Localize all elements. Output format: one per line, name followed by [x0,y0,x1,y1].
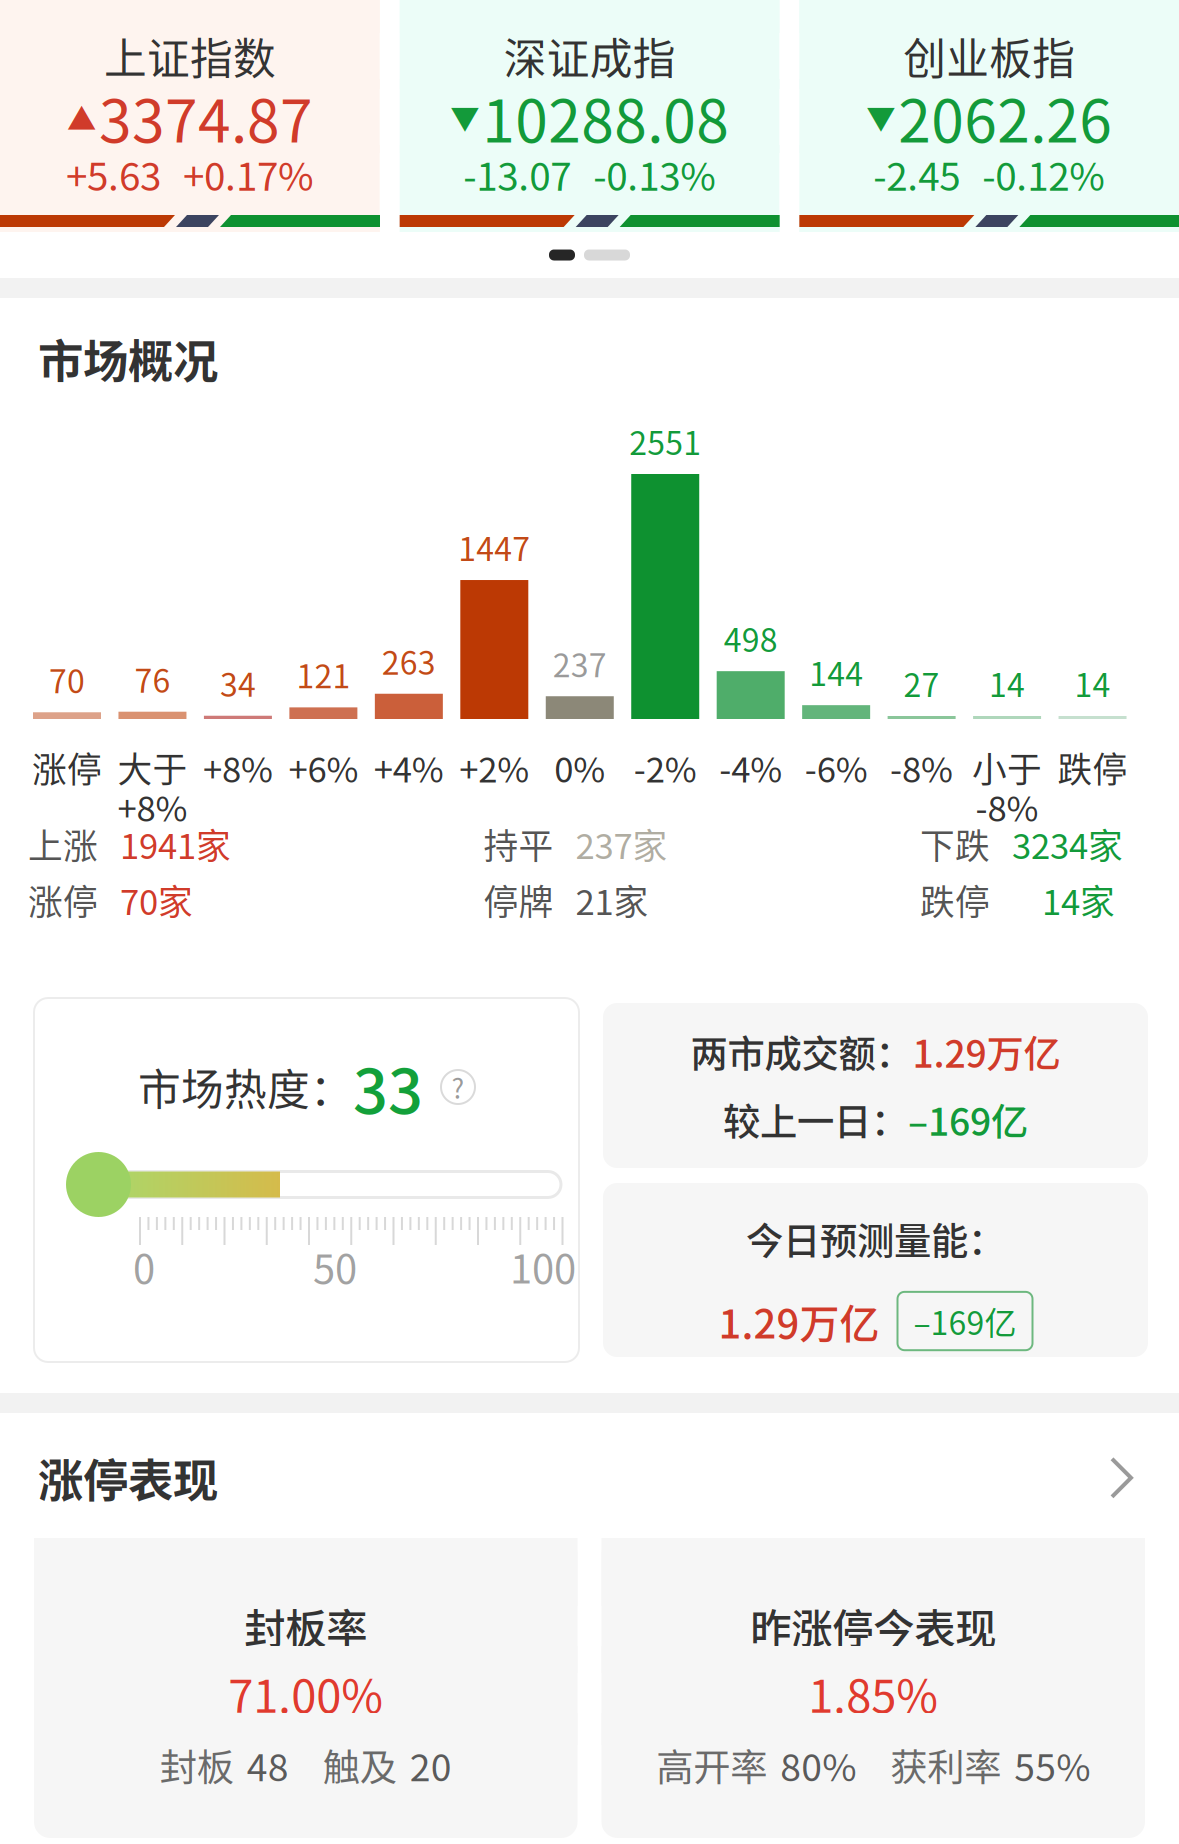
staticText: 封板 [160,1738,234,1792]
staticText: 市场概况 [38,326,218,391]
staticText: 持平 [483,819,553,869]
button[interactable]: 涨停表现 [0,1413,1179,1538]
staticText: 停牌 [483,875,553,925]
staticText: 21家 [575,875,648,925]
staticText: 1.29万亿 [912,1024,1060,1078]
staticText: 封板率 [244,1596,367,1656]
staticText: 2551 [629,418,701,464]
staticText: 1447 [458,524,530,570]
staticText: 33 [353,1043,423,1131]
staticText: +6% [288,742,358,793]
staticText: 14家 [1042,875,1115,925]
button[interactable]: 上证指数 [0,0,380,232]
staticText: 上涨 [28,819,98,869]
staticText: 1941家 [120,819,231,869]
staticText: 144 [809,649,863,695]
staticText: 14 [1074,660,1110,706]
staticText: -6% [805,742,868,793]
staticText: +2% [459,742,529,793]
staticText: 14 [989,660,1025,706]
staticText: 触及 [323,1738,397,1792]
staticText: 2062.26 [898,74,1112,159]
staticText: 50 [313,1237,357,1295]
staticText: 较上一日： [723,1092,908,1147]
staticText: -8% [890,742,953,793]
staticText: 今日预测量能： [746,1212,1005,1266]
staticText: 48 [247,1738,289,1792]
staticText: 121 [296,651,350,697]
staticText: 70 [49,656,85,702]
staticText: 跌停 [920,875,990,925]
staticText: 两市成交额： [690,1024,912,1078]
staticText: 34 [220,660,256,706]
staticText: 高开率 [656,1738,767,1792]
staticText: 71.00% [228,1660,383,1726]
button[interactable]: 封板率 [34,1538,577,1838]
staticText: 昨涨停今表现 [750,1596,996,1656]
staticText: +5.63 [66,146,161,202]
staticText: 下跌 [920,819,990,869]
staticText: 深证成指 [504,25,676,87]
staticText: 0% [554,742,605,793]
staticText: 涨停表现 [38,1445,218,1511]
staticText: +0.17% [183,146,314,202]
staticText: 创业板指 [903,25,1075,87]
staticText: 涨停 [32,742,102,793]
staticText: 大于 [117,742,187,793]
staticText: 76 [134,655,170,702]
staticText: –169亿 [908,1092,1028,1147]
staticText: 20 [410,1738,452,1792]
staticText: 80% [780,1738,856,1792]
staticText: 涨停 [28,875,98,925]
staticText: 498 [724,615,778,661]
staticText: 70家 [120,875,193,925]
staticText: -4% [719,742,782,793]
staticText: -2.45 [873,146,960,202]
staticText: -0.12% [982,146,1105,202]
staticText: 3234家 [1012,819,1123,869]
staticText: +8% [117,781,187,832]
button[interactable]: 创业板指 [799,0,1179,232]
staticText: 0 [133,1237,155,1295]
staticText: 跌停 [1057,742,1127,793]
staticText: 237 [553,640,607,686]
staticText: 237家 [575,819,667,869]
staticText: 市场热度： [138,1056,353,1118]
staticText: 55% [1014,1738,1090,1792]
staticText: ▼ [450,96,479,138]
staticText: ▲ [67,96,96,138]
staticText: +4% [374,742,444,793]
staticText: ▼ [866,96,895,138]
staticText: -0.13% [593,146,716,202]
staticText: -13.07 [463,146,571,202]
staticText: 获利率 [890,1738,1001,1792]
staticText: 27 [904,660,940,706]
button[interactable]: 深证成指 [400,0,779,232]
staticText: -2% [634,742,697,793]
staticText: 1.29万亿 [718,1292,879,1350]
staticText: 1.85% [808,1660,938,1726]
staticText: –169亿 [913,1298,1016,1344]
staticText: ? [451,1068,464,1106]
staticText: +8% [203,742,273,793]
staticText: 3374.87 [99,74,313,159]
button[interactable]: 昨涨停今表现 [601,1538,1145,1838]
staticText: 263 [382,638,436,684]
staticText: -8% [976,781,1039,832]
staticText: 100 [510,1237,576,1295]
staticText: 上证指数 [104,25,276,87]
staticText: 小于 [972,742,1042,793]
staticText: 10288.08 [482,74,729,159]
